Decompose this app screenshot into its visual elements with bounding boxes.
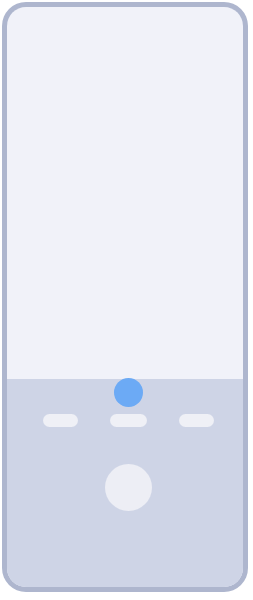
button[interactable]: Nav item 1	[43, 414, 78, 427]
button[interactable]: Primary action	[114, 378, 143, 407]
button[interactable]: Nav item 3	[179, 414, 214, 427]
button[interactable]: Nav item 2	[110, 414, 147, 427]
button[interactable]: Profile	[105, 464, 152, 511]
